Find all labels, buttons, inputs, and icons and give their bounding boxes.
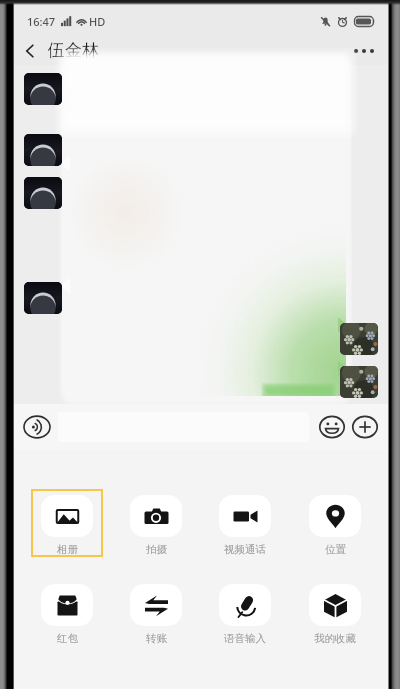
button[interactable]: Avatar [24, 177, 62, 209]
button[interactable]: 语音输入 [209, 578, 281, 646]
staticText: 拍摄 [146, 543, 167, 556]
staticText: 语音输入 [224, 632, 266, 645]
button[interactable]: 拍摄 [120, 489, 192, 557]
button[interactable]: Avatar [24, 73, 62, 105]
button[interactable]: More options [348, 36, 380, 65]
button[interactable]: 转账 [120, 578, 192, 646]
button[interactable]: Avatar [340, 323, 378, 355]
button[interactable]: Back [16, 37, 44, 65]
staticText: 我的收藏 [314, 632, 356, 645]
staticText: 转账 [146, 632, 167, 645]
button[interactable]: Avatar [24, 282, 62, 314]
button[interactable]: Voice message [22, 412, 52, 442]
staticText: 视频通话 [224, 543, 266, 556]
staticText: 红包 [57, 632, 78, 645]
button[interactable]: Emoji [317, 412, 347, 442]
staticText: 16:47 [27, 14, 56, 29]
button[interactable]: 相册 [31, 489, 103, 557]
button[interactable]: 视频通话 [209, 489, 281, 557]
button[interactable]: Avatar [340, 366, 378, 398]
button[interactable]: More functions [350, 412, 380, 442]
staticText: HD [89, 14, 106, 29]
button[interactable]: Avatar [24, 134, 62, 166]
button[interactable]: 我的收藏 [299, 578, 371, 646]
button[interactable]: 位置 [299, 489, 371, 557]
staticText: 相册 [57, 543, 78, 556]
staticText: 伍金林 [48, 40, 99, 61]
staticText: 位置 [325, 543, 346, 556]
button[interactable]: 红包 [31, 578, 103, 646]
